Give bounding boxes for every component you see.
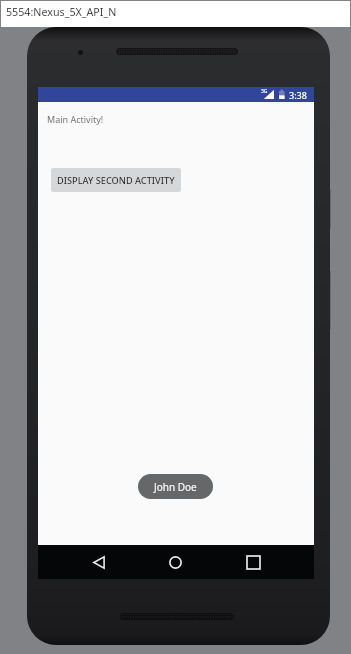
button[interactable]: Home — [145, 545, 205, 579]
staticText: DISPLAY SECOND ACTIVITY — [57, 174, 175, 187]
staticText: 3:38 — [289, 89, 307, 101]
button[interactable]: DISPLAY SECOND ACTIVITY — [51, 168, 181, 192]
staticText: 3G — [261, 88, 268, 95]
button[interactable]: Back — [52, 545, 145, 579]
staticText: 5554:Nexus_5X_API_N — [6, 5, 117, 20]
staticText: John Doe — [154, 480, 197, 494]
staticText: Main Activity! — [47, 113, 104, 125]
button[interactable]: Recents — [205, 545, 302, 579]
button[interactable]: John Doe — [138, 474, 213, 499]
